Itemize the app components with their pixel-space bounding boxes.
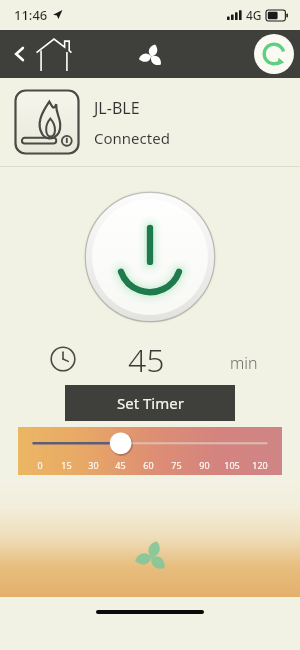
staticText: JL-BLE <box>94 97 140 119</box>
button[interactable]: Set Timer <box>65 385 235 421</box>
staticText: 4G <box>246 7 262 23</box>
button[interactable]: Timer <box>50 346 76 372</box>
button[interactable]: Home <box>30 30 78 78</box>
staticText: min <box>230 352 258 374</box>
staticText: 90 <box>199 459 210 471</box>
button[interactable]: Refresh <box>254 34 294 74</box>
button[interactable]: Timer slider <box>18 427 282 455</box>
staticText: 60 <box>143 459 154 471</box>
staticText: Connected <box>94 128 170 148</box>
staticText: 0 <box>37 459 43 471</box>
button[interactable]: JL-BLE <box>0 78 300 166</box>
staticText: 105 <box>224 459 240 471</box>
staticText: 75 <box>171 459 182 471</box>
staticText: 30 <box>88 459 99 471</box>
button[interactable]: Power <box>83 190 217 324</box>
staticText: 120 <box>252 459 268 471</box>
staticText: 15 <box>61 459 72 471</box>
button[interactable]: Back <box>0 34 40 74</box>
staticText: Set Timer <box>117 393 184 413</box>
staticText: 45 <box>115 459 126 471</box>
staticText: 45 <box>128 338 165 378</box>
staticText: 11:46 <box>14 6 48 24</box>
